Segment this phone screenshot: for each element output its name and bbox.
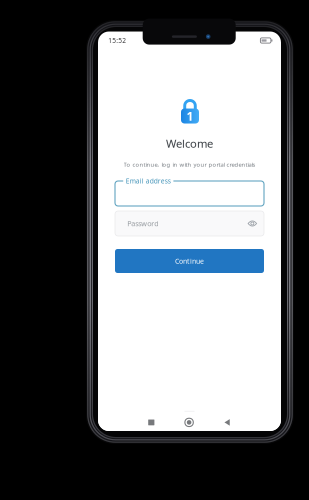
staticText: Continue [175,256,204,266]
button[interactable]: Continue [115,249,264,273]
button[interactable]: Email address [115,181,264,206]
button[interactable]: Password [115,211,264,236]
button[interactable]: Home [179,412,199,433]
staticText: To continue, log in with your portal cre… [123,161,255,168]
staticText: Email address [126,176,171,186]
staticText: 15:52 [108,36,126,45]
button[interactable]: Recent apps [142,413,160,431]
staticText: Welcome [166,136,213,151]
staticText: Password [127,219,158,228]
button[interactable]: Back [218,413,236,432]
staticText: 1 [186,108,193,124]
